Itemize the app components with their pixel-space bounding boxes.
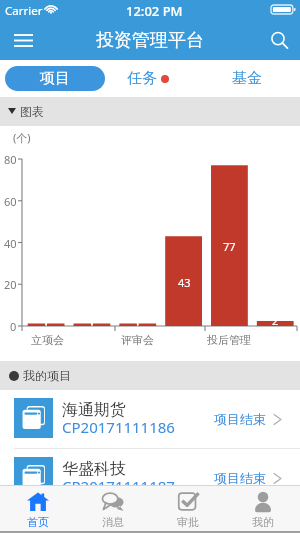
staticText: 海通期货 [62, 400, 126, 420]
staticText: 20 [4, 277, 17, 292]
staticText: 消息 [102, 515, 124, 529]
staticText: 我的项目 [23, 368, 71, 383]
button[interactable]: 我的项目 [0, 361, 300, 390]
button[interactable]: 海通期货 [0, 390, 300, 449]
button[interactable]: 基金 [207, 60, 287, 97]
staticText: CP20171111186 [62, 417, 175, 437]
staticText: 80 [4, 152, 17, 167]
button[interactable]: 我的 [225, 486, 300, 531]
button[interactable]: 华盛科技 [0, 449, 300, 508]
staticText: 我的 [252, 515, 274, 529]
staticText: (个) [13, 130, 31, 145]
staticText: 60 [4, 194, 17, 209]
button[interactable]: 任务 [110, 60, 186, 97]
button[interactable]: 图表 [0, 97, 300, 126]
staticText: 审批 [177, 515, 199, 529]
staticText: 投资管理平台 [96, 29, 204, 52]
staticText: 0 [10, 319, 17, 334]
button[interactable]: Menu [6, 20, 40, 60]
button[interactable]: 项目 [5, 66, 105, 91]
button[interactable]: 消息 [75, 486, 150, 531]
staticText: 华盛科技 [62, 459, 126, 479]
staticText: Carrier [5, 3, 43, 19]
staticText: 项目 [40, 69, 70, 88]
button[interactable]: Search [262, 20, 296, 60]
staticText: 评审会 [121, 333, 154, 347]
staticText: 任务 [127, 69, 157, 88]
button[interactable]: 首页 [0, 486, 75, 531]
staticText: 图表 [20, 104, 44, 119]
staticText: 首页 [27, 515, 49, 529]
staticText: 立项会 [31, 333, 64, 347]
staticText: 77 [223, 239, 236, 254]
staticText: 12:02 PM [126, 2, 183, 20]
staticText: 40 [4, 236, 17, 251]
staticText: 项目结束 [214, 411, 266, 427]
staticText: 43 [178, 275, 191, 290]
staticText: 2 [272, 313, 279, 328]
staticText: 投后管理 [207, 333, 251, 347]
staticText: 基金 [232, 69, 262, 88]
staticText: CP20171111187 [62, 476, 175, 496]
staticText: 项目结束 [214, 470, 266, 486]
button[interactable]: 审批 [150, 486, 225, 531]
